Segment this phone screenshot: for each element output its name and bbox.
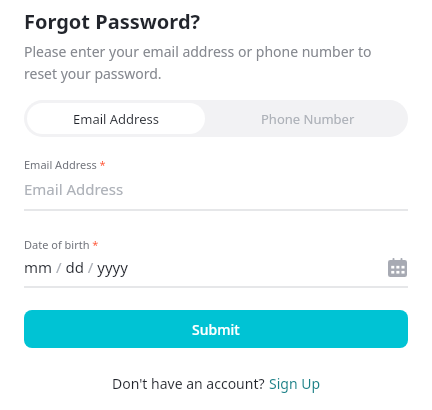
staticText: Email Address *: [24, 157, 106, 172]
button[interactable]: mm / dd / yyyy: [24, 255, 408, 279]
staticText: Sign Up: [269, 374, 321, 393]
staticText: Forgot Password?: [24, 8, 201, 35]
staticText: mm / dd / yyyy: [24, 257, 128, 277]
staticText: Date of birth *: [24, 237, 99, 252]
button[interactable]: Phone Number: [208, 100, 408, 137]
button[interactable]: Open calendar picker: [386, 256, 408, 278]
button[interactable]: Email Address: [27, 103, 205, 134]
staticText: Email Address: [73, 110, 159, 128]
button[interactable]: Email Address: [24, 178, 408, 200]
staticText: Please enter your email address or phone…: [24, 42, 404, 83]
button[interactable]: Sign Up: [269, 374, 321, 393]
staticText: Phone Number: [261, 110, 355, 128]
staticText: Email Address: [24, 179, 124, 199]
staticText: Don't have an account?: [112, 374, 269, 393]
button[interactable]: Submit: [24, 310, 408, 348]
staticText: Submit: [192, 320, 240, 339]
